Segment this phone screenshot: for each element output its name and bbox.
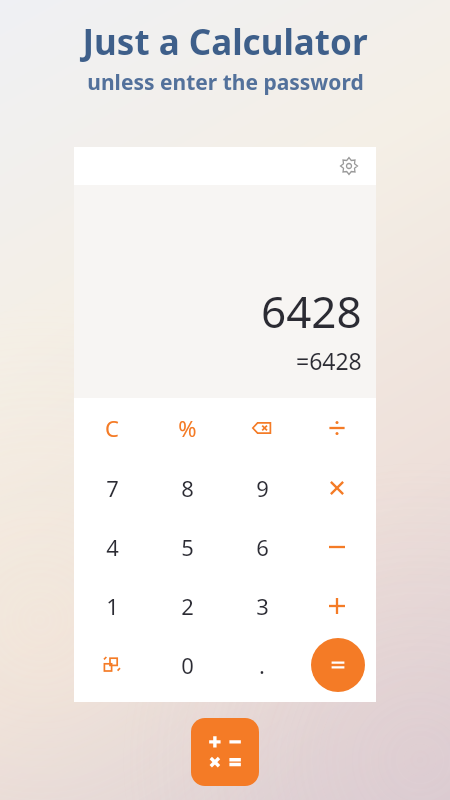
button[interactable]: 1 <box>82 576 142 636</box>
button[interactable]: . <box>232 635 292 695</box>
button[interactable]: 2 <box>157 576 217 636</box>
button[interactable]: Plus <box>307 576 367 636</box>
staticText: unless enter the password <box>87 68 364 97</box>
button[interactable]: Convert <box>82 635 142 695</box>
button[interactable]: 7 <box>82 458 142 518</box>
staticText: 3 <box>256 591 269 621</box>
button[interactable]: Backspace <box>232 398 292 458</box>
staticText: Just a Calculator <box>82 18 368 66</box>
button[interactable]: Equals <box>311 638 365 692</box>
staticText: % <box>178 413 197 443</box>
button[interactable]: 5 <box>157 517 217 577</box>
button[interactable]: 8 <box>157 458 217 518</box>
staticText: =6428 <box>296 345 362 376</box>
staticText: 6428 <box>261 281 362 341</box>
staticText: 9 <box>256 473 269 503</box>
button[interactable]: 9 <box>232 458 292 518</box>
staticText: 2 <box>181 591 194 621</box>
button[interactable]: C <box>82 398 142 458</box>
button[interactable]: 6 <box>232 517 292 577</box>
button[interactable]: % <box>157 398 217 458</box>
staticText: . <box>259 650 265 680</box>
staticText: 8 <box>181 473 194 503</box>
button[interactable]: Minus <box>307 517 367 577</box>
button[interactable]: 4 <box>82 517 142 577</box>
button[interactable]: Settings <box>334 151 364 181</box>
button[interactable]: 0 <box>157 635 217 695</box>
staticText: 4 <box>106 532 119 562</box>
staticText: 7 <box>106 473 119 503</box>
staticText: C <box>105 413 119 443</box>
button[interactable]: Divide <box>307 398 367 458</box>
button[interactable]: Calculator app <box>191 718 259 786</box>
button[interactable]: 3 <box>232 576 292 636</box>
staticText: 1 <box>106 591 119 621</box>
staticText: 6 <box>256 532 269 562</box>
button[interactable]: Multiply <box>307 458 367 518</box>
staticText: 5 <box>181 532 194 562</box>
staticText: 0 <box>181 650 194 680</box>
